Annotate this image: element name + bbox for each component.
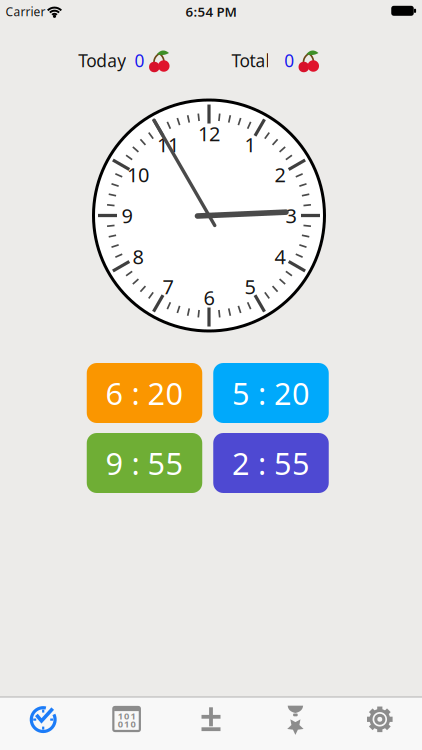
button[interactable] bbox=[0, 697, 84, 750]
button[interactable]: 1 bbox=[84, 697, 169, 750]
staticText: 0 bbox=[118, 718, 123, 730]
button[interactable] bbox=[253, 697, 338, 750]
button[interactable]: 5 : 20 bbox=[213, 363, 329, 423]
button[interactable] bbox=[169, 697, 253, 750]
staticText: Total bbox=[231, 49, 269, 72]
button[interactable] bbox=[338, 697, 422, 750]
staticText: 6:54 PM bbox=[185, 3, 236, 20]
button[interactable]: 6 : 20 bbox=[87, 363, 202, 423]
staticText: 0 bbox=[284, 49, 294, 72]
staticText: 1 bbox=[118, 710, 123, 722]
staticText: 12 bbox=[198, 120, 220, 147]
staticText: 0 bbox=[124, 710, 129, 722]
staticText: 0 bbox=[130, 718, 135, 730]
staticText: 3 bbox=[285, 202, 296, 229]
staticText: 1 bbox=[244, 131, 255, 158]
staticText: 5 bbox=[244, 273, 255, 300]
staticText: 4 bbox=[274, 243, 285, 270]
staticText: 2 : 55 bbox=[232, 443, 310, 483]
staticText: Today bbox=[78, 49, 126, 72]
staticText: Carrier bbox=[5, 3, 45, 19]
staticText: 6 bbox=[203, 284, 214, 311]
staticText: 9 : 55 bbox=[105, 443, 183, 483]
staticText: 7 bbox=[162, 273, 173, 300]
button[interactable]: 2 : 55 bbox=[213, 433, 329, 493]
button[interactable]: 9 : 55 bbox=[87, 433, 202, 493]
staticText: 10 bbox=[127, 161, 149, 188]
staticText: 9 bbox=[121, 202, 132, 229]
staticText: 5 : 20 bbox=[232, 373, 310, 413]
staticText: 6 : 20 bbox=[105, 373, 183, 413]
staticText: 0 bbox=[134, 49, 144, 72]
staticText: 11 bbox=[157, 131, 179, 158]
staticText: 2 bbox=[274, 161, 285, 188]
staticText: 1 bbox=[124, 718, 129, 730]
staticText: 8 bbox=[132, 243, 143, 270]
staticText: 1 bbox=[130, 710, 135, 722]
